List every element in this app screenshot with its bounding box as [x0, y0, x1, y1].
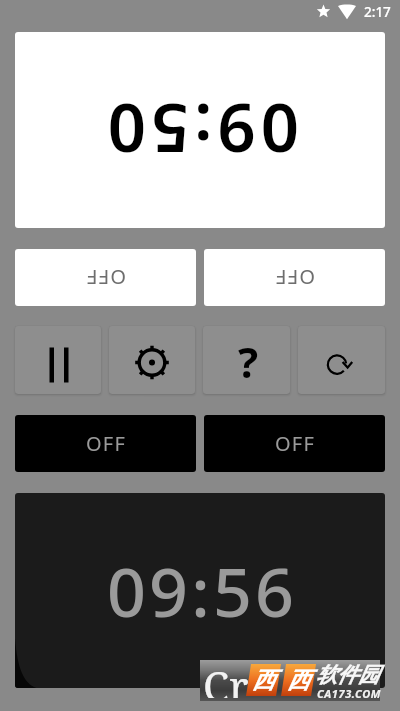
button[interactable]: 09:56	[15, 493, 385, 688]
staticText: 西	[287, 666, 310, 695]
staticText: 2:17	[364, 3, 391, 21]
button[interactable]: Pause	[15, 326, 101, 394]
staticText: 09:56	[107, 544, 298, 637]
button[interactable]: Help	[203, 326, 290, 394]
button[interactable]: OFF	[15, 249, 196, 306]
staticText: OFF	[86, 264, 126, 291]
staticText: 09:50	[102, 85, 299, 176]
button[interactable]: OFF	[15, 415, 196, 472]
staticText: ?	[238, 333, 259, 390]
staticText: OFF	[275, 264, 315, 291]
button[interactable]: Reset	[298, 326, 385, 394]
staticText: OFF	[275, 430, 315, 457]
button[interactable]: Settings	[109, 326, 195, 394]
staticText: 软件园	[316, 662, 379, 688]
staticText: Cr	[203, 657, 249, 698]
button[interactable]: 09:50	[15, 32, 385, 228]
button[interactable]: OFF	[204, 415, 385, 472]
staticText: 西	[252, 666, 275, 695]
button[interactable]: OFF	[204, 249, 385, 306]
staticText: OFF	[86, 430, 126, 457]
staticText: CA173.COM	[317, 686, 382, 701]
